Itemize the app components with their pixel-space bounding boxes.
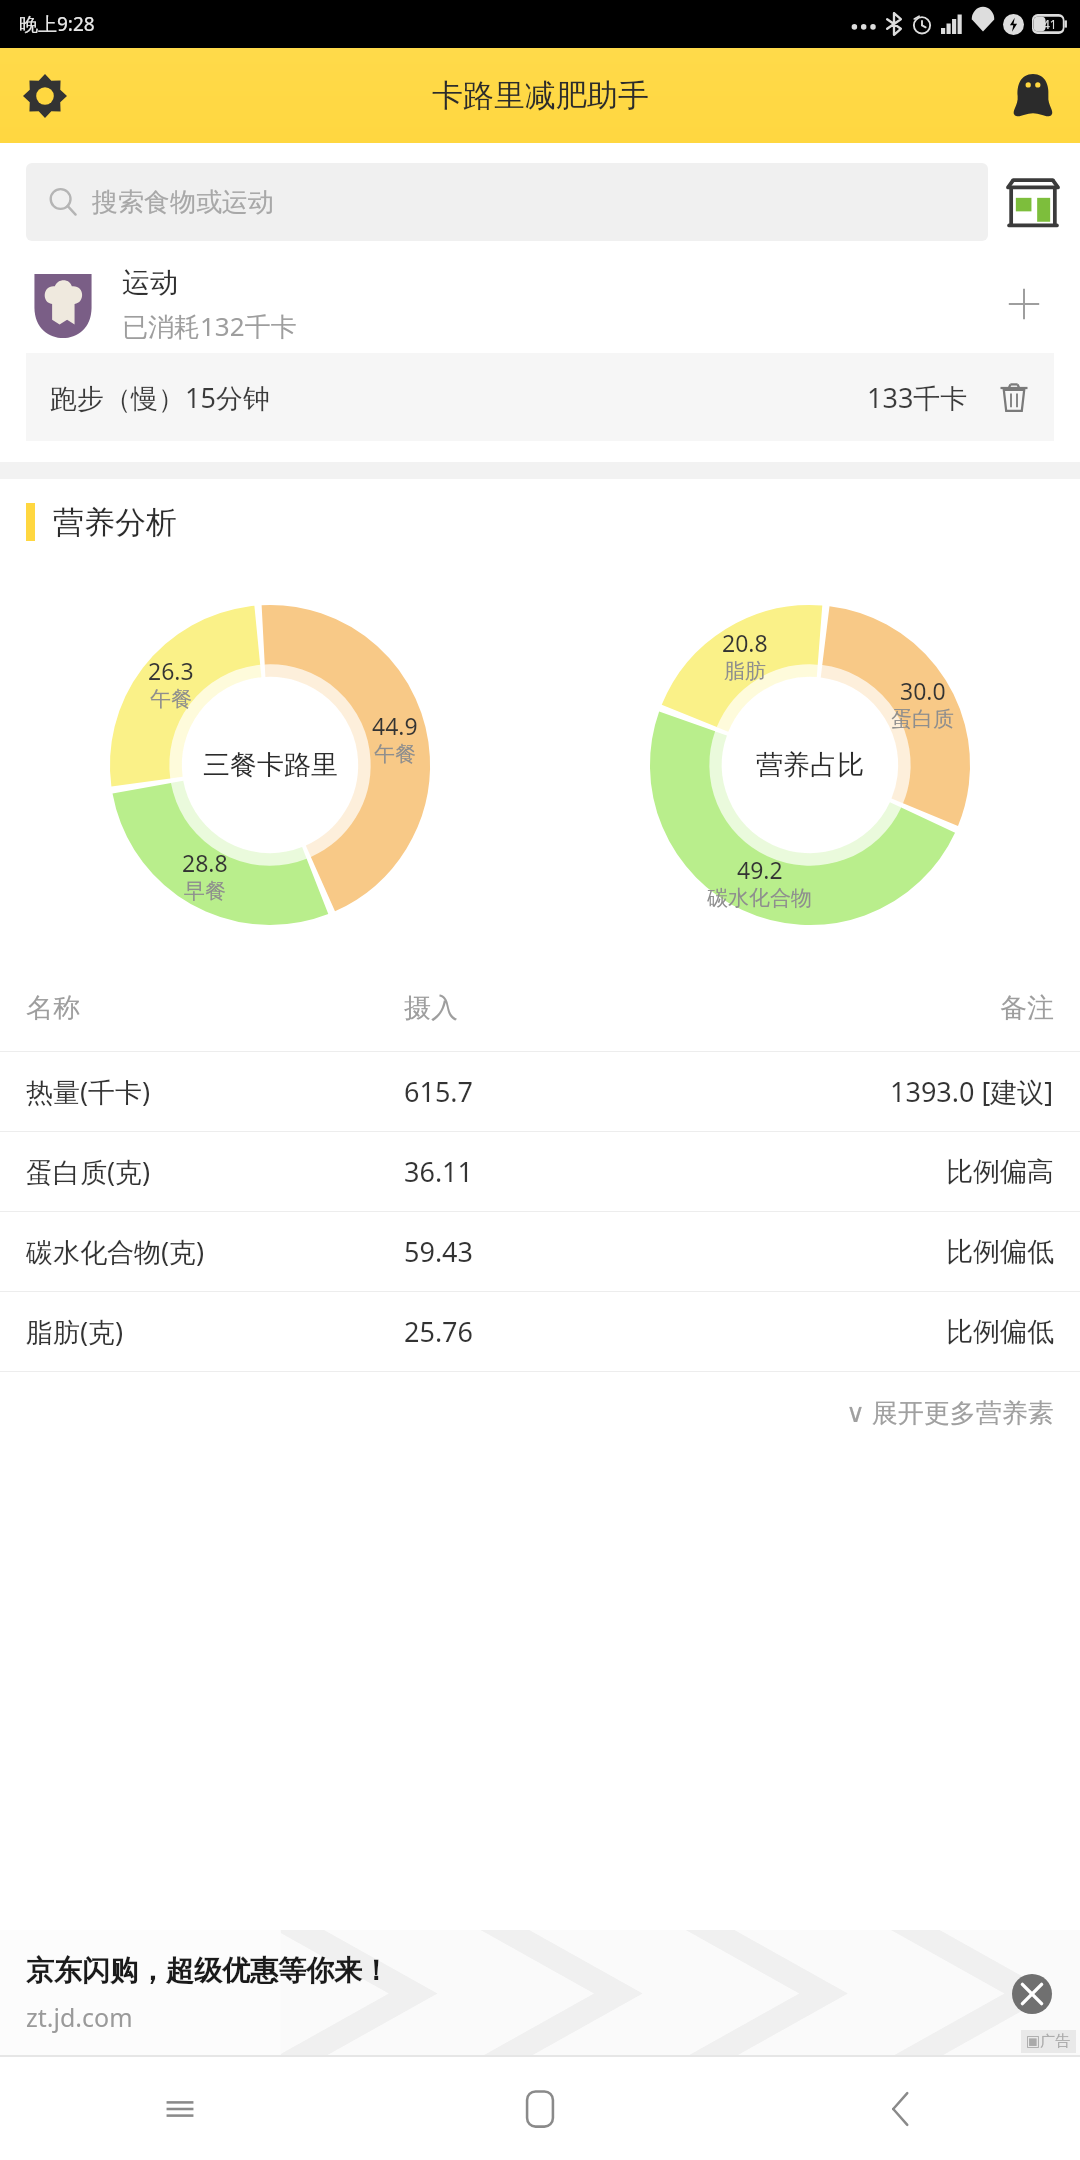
- button[interactable]: 脂肪(克): [0, 1292, 1080, 1371]
- staticText: 摄入: [404, 991, 458, 1025]
- staticText: 营养占比: [756, 748, 864, 782]
- staticText: 热量(千卡): [26, 1073, 151, 1110]
- button[interactable]: ∨ 展开更多营养素: [0, 1372, 1080, 1452]
- button[interactable]: 热量(千卡): [0, 1052, 1080, 1131]
- staticText: 615.7: [404, 1073, 474, 1110]
- button[interactable]: Shop: [1002, 171, 1064, 233]
- staticText: 44.9: [372, 710, 418, 741]
- staticText: 20.8: [722, 627, 768, 658]
- button[interactable]: 运动: [26, 255, 1054, 353]
- staticText: 30.0: [900, 675, 946, 706]
- button[interactable]: Recent apps: [0, 2057, 360, 2160]
- staticText: zt.jd.com: [26, 2000, 133, 2034]
- staticText: 脂肪: [724, 658, 766, 684]
- button[interactable]: Add: [994, 274, 1054, 334]
- button[interactable]: Home: [360, 2057, 720, 2160]
- staticText: 营养分析: [53, 503, 177, 542]
- staticText: 卡路里减肥助手: [432, 76, 649, 115]
- button[interactable]: 搜索食物或运动: [26, 163, 988, 241]
- staticText: 已消耗132千卡: [122, 308, 297, 344]
- staticText: 比例偏低: [946, 1235, 1054, 1269]
- button[interactable]: Delete: [992, 375, 1036, 419]
- staticText: 蛋白质(克): [26, 1153, 151, 1190]
- button[interactable]: Settings: [16, 67, 74, 125]
- staticText: 49.2: [737, 854, 783, 885]
- staticText: ∨ 展开更多营养素: [846, 1394, 1054, 1430]
- staticText: 比例偏高: [946, 1155, 1054, 1189]
- staticText: 午餐: [150, 686, 192, 712]
- staticText: 京东闪购，超级优惠等你来！: [26, 1953, 390, 1988]
- staticText: 41: [1043, 16, 1057, 32]
- button[interactable]: Back: [720, 2057, 1080, 2160]
- staticText: 晚上9:28: [19, 11, 95, 37]
- staticText: 蛋白质: [891, 706, 954, 732]
- button[interactable]: 蛋白质(克): [0, 1132, 1080, 1211]
- staticText: 25.76: [404, 1313, 474, 1350]
- staticText: 早餐: [184, 878, 226, 904]
- staticText: 三餐卡路里: [203, 748, 338, 782]
- staticText: ▣广告: [1026, 2032, 1071, 2051]
- staticText: 28.8: [182, 847, 228, 878]
- button[interactable]: 京东闪购，超级优惠等你来！: [0, 1930, 1080, 2057]
- staticText: 搜索食物或运动: [92, 186, 274, 219]
- staticText: 26.3: [148, 655, 194, 686]
- button[interactable]: 名称: [0, 965, 1080, 1051]
- staticText: 59.43: [404, 1233, 474, 1270]
- button[interactable]: Account: [1004, 67, 1062, 125]
- button[interactable]: 跑步（慢）15分钟: [26, 353, 1054, 441]
- staticText: 36.11: [404, 1153, 474, 1190]
- staticText: 午餐: [374, 741, 416, 767]
- staticText: 脂肪(克): [26, 1313, 124, 1350]
- staticText: 跑步（慢）15分钟: [50, 379, 270, 416]
- staticText: 运动: [122, 265, 178, 300]
- staticText: 1393.0 [建议]: [890, 1073, 1054, 1110]
- staticText: 比例偏低: [946, 1315, 1054, 1349]
- button[interactable]: Close ad: [1006, 1968, 1058, 2020]
- staticText: 备注: [1000, 991, 1054, 1025]
- staticText: 碳水化合物(克): [26, 1233, 205, 1270]
- staticText: 碳水化合物: [707, 885, 812, 911]
- staticText: 133千卡: [867, 379, 968, 416]
- staticText: 名称: [26, 991, 80, 1025]
- button[interactable]: 碳水化合物(克): [0, 1212, 1080, 1291]
